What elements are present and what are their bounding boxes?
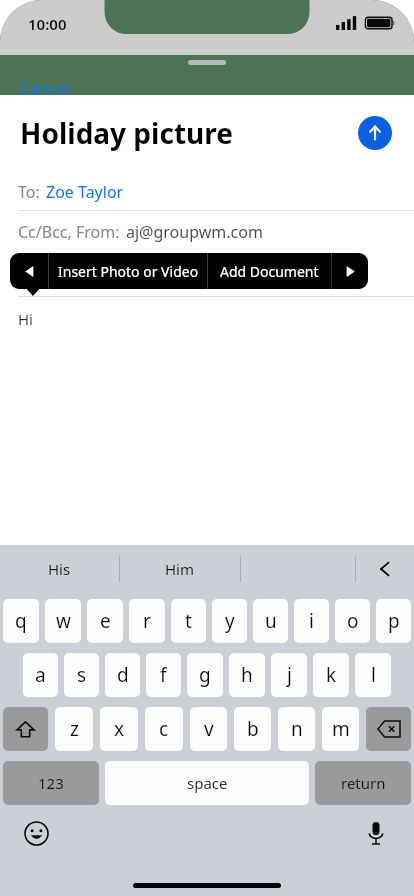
button[interactable]: t [171, 599, 206, 643]
staticText: l [371, 662, 376, 688]
staticText: u [265, 608, 277, 634]
staticText: 10:00 [28, 14, 67, 34]
staticText: s [77, 662, 87, 688]
staticText: c [159, 716, 169, 742]
staticText: Insert Photo or Video [58, 262, 199, 281]
button[interactable]: p [376, 599, 411, 643]
staticText: d [117, 662, 129, 688]
staticText: Cc/Bcc, From: [18, 221, 120, 243]
staticText: y [225, 608, 235, 634]
button[interactable]: i [294, 599, 329, 643]
button[interactable]: g [187, 653, 223, 697]
staticText: 123 [38, 773, 64, 793]
button[interactable]: Cancel [10, 74, 80, 104]
staticText: p [388, 608, 400, 634]
button[interactable]: z [55, 707, 93, 751]
button[interactable]: w [45, 599, 81, 643]
staticText: q [15, 608, 27, 634]
button[interactable]: a [23, 653, 58, 697]
staticText: Hi [18, 309, 33, 329]
button[interactable]: Emoji [18, 815, 54, 851]
staticText: j [287, 662, 292, 688]
staticText: n [291, 716, 303, 742]
staticText: b [247, 716, 259, 742]
button[interactable]: m [322, 707, 359, 751]
button[interactable]: Previous [10, 253, 48, 289]
button[interactable]: c [145, 707, 183, 751]
button[interactable]: Add Document [208, 253, 331, 289]
button[interactable]: Backspace [366, 707, 411, 751]
button[interactable]: u [253, 599, 288, 643]
staticText: Add Document [220, 262, 319, 281]
staticText: r [143, 608, 151, 634]
staticText: f [160, 662, 167, 688]
button[interactable]: y [212, 599, 247, 643]
staticText: k [326, 662, 337, 688]
staticText: m [332, 716, 350, 742]
button[interactable]: x [100, 707, 138, 751]
button[interactable]: s [64, 653, 99, 697]
button[interactable]: Shift [3, 707, 48, 751]
button[interactable]: return [315, 761, 411, 805]
staticText: t [185, 608, 192, 634]
staticText: a [35, 662, 46, 688]
staticText: g [199, 662, 211, 688]
button[interactable]: space [105, 761, 309, 805]
staticText: space [187, 773, 228, 793]
staticText: x [114, 716, 125, 742]
button[interactable]: Dictation [358, 815, 394, 851]
button[interactable]: Cc/Bcc, From: [0, 211, 414, 253]
button[interactable]: d [105, 653, 140, 697]
staticText: o [347, 608, 359, 634]
staticText: return [341, 773, 386, 793]
button[interactable]: Insert Photo or Video [49, 253, 207, 289]
button[interactable]: n [278, 707, 315, 751]
button[interactable]: To: [0, 174, 414, 210]
button[interactable]: v [190, 707, 227, 751]
staticText: v [204, 716, 214, 742]
button[interactable]: His [0, 545, 119, 593]
button[interactable]: Him [120, 545, 240, 593]
staticText: Him [165, 559, 195, 579]
staticText: e [100, 608, 111, 634]
button[interactable]: Send [358, 116, 392, 150]
staticText: i [309, 608, 314, 634]
button[interactable]: r [129, 599, 165, 643]
staticText: His [48, 559, 71, 579]
staticText: w [56, 608, 71, 634]
staticText: z [70, 716, 79, 742]
staticText: h [241, 662, 253, 688]
button[interactable]: k [313, 653, 349, 697]
button[interactable]: b [234, 707, 271, 751]
staticText: Zoe Taylor [46, 181, 124, 203]
staticText: Cancel [20, 78, 70, 100]
button[interactable]: Back [356, 545, 414, 593]
button[interactable]: o [335, 599, 370, 643]
button[interactable]: h [229, 653, 265, 697]
staticText: Holiday picture [20, 114, 358, 152]
button[interactable]: More [332, 253, 368, 289]
button[interactable]: e [87, 599, 123, 643]
button[interactable]: f [146, 653, 181, 697]
staticText: aj@groupwm.com [126, 221, 263, 243]
button[interactable]: 123 [3, 761, 99, 805]
staticText: To: [18, 181, 40, 203]
button[interactable]: l [355, 653, 391, 697]
button[interactable]: j [271, 653, 307, 697]
button[interactable]: q [3, 599, 39, 643]
